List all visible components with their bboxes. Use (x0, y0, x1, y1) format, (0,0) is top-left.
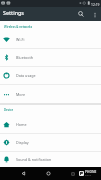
button[interactable]: Wi-Fi (0, 31, 101, 49)
staticText: 12:19 (91, 2, 100, 6)
button[interactable]: More (0, 85, 101, 103)
staticText: More (16, 92, 26, 97)
button[interactable]: Sound & notification (0, 152, 101, 167)
button[interactable]: Data usage (0, 67, 101, 85)
staticText: PHONE (85, 170, 97, 174)
staticText: Display (16, 140, 29, 145)
staticText: Wireless & networks (4, 25, 33, 29)
button[interactable]: Home (42, 167, 54, 180)
staticText: Device (4, 108, 14, 112)
staticText: Settings (3, 9, 24, 16)
staticText: Home (16, 122, 27, 127)
button[interactable]: Display (0, 134, 101, 152)
staticText: Data usage (16, 73, 36, 78)
button[interactable]: Back (17, 167, 29, 180)
staticText: arena (85, 174, 91, 177)
button[interactable]: Search (74, 7, 88, 21)
staticText: Wi-Fi (16, 37, 25, 42)
button[interactable]: Recent apps (67, 167, 79, 180)
staticText: Sound & notification (16, 157, 52, 162)
staticText: Bluetooth (16, 55, 34, 60)
button[interactable]: More options (88, 8, 101, 21)
button[interactable]: Home (0, 116, 101, 134)
button[interactable]: Bluetooth (0, 49, 101, 67)
